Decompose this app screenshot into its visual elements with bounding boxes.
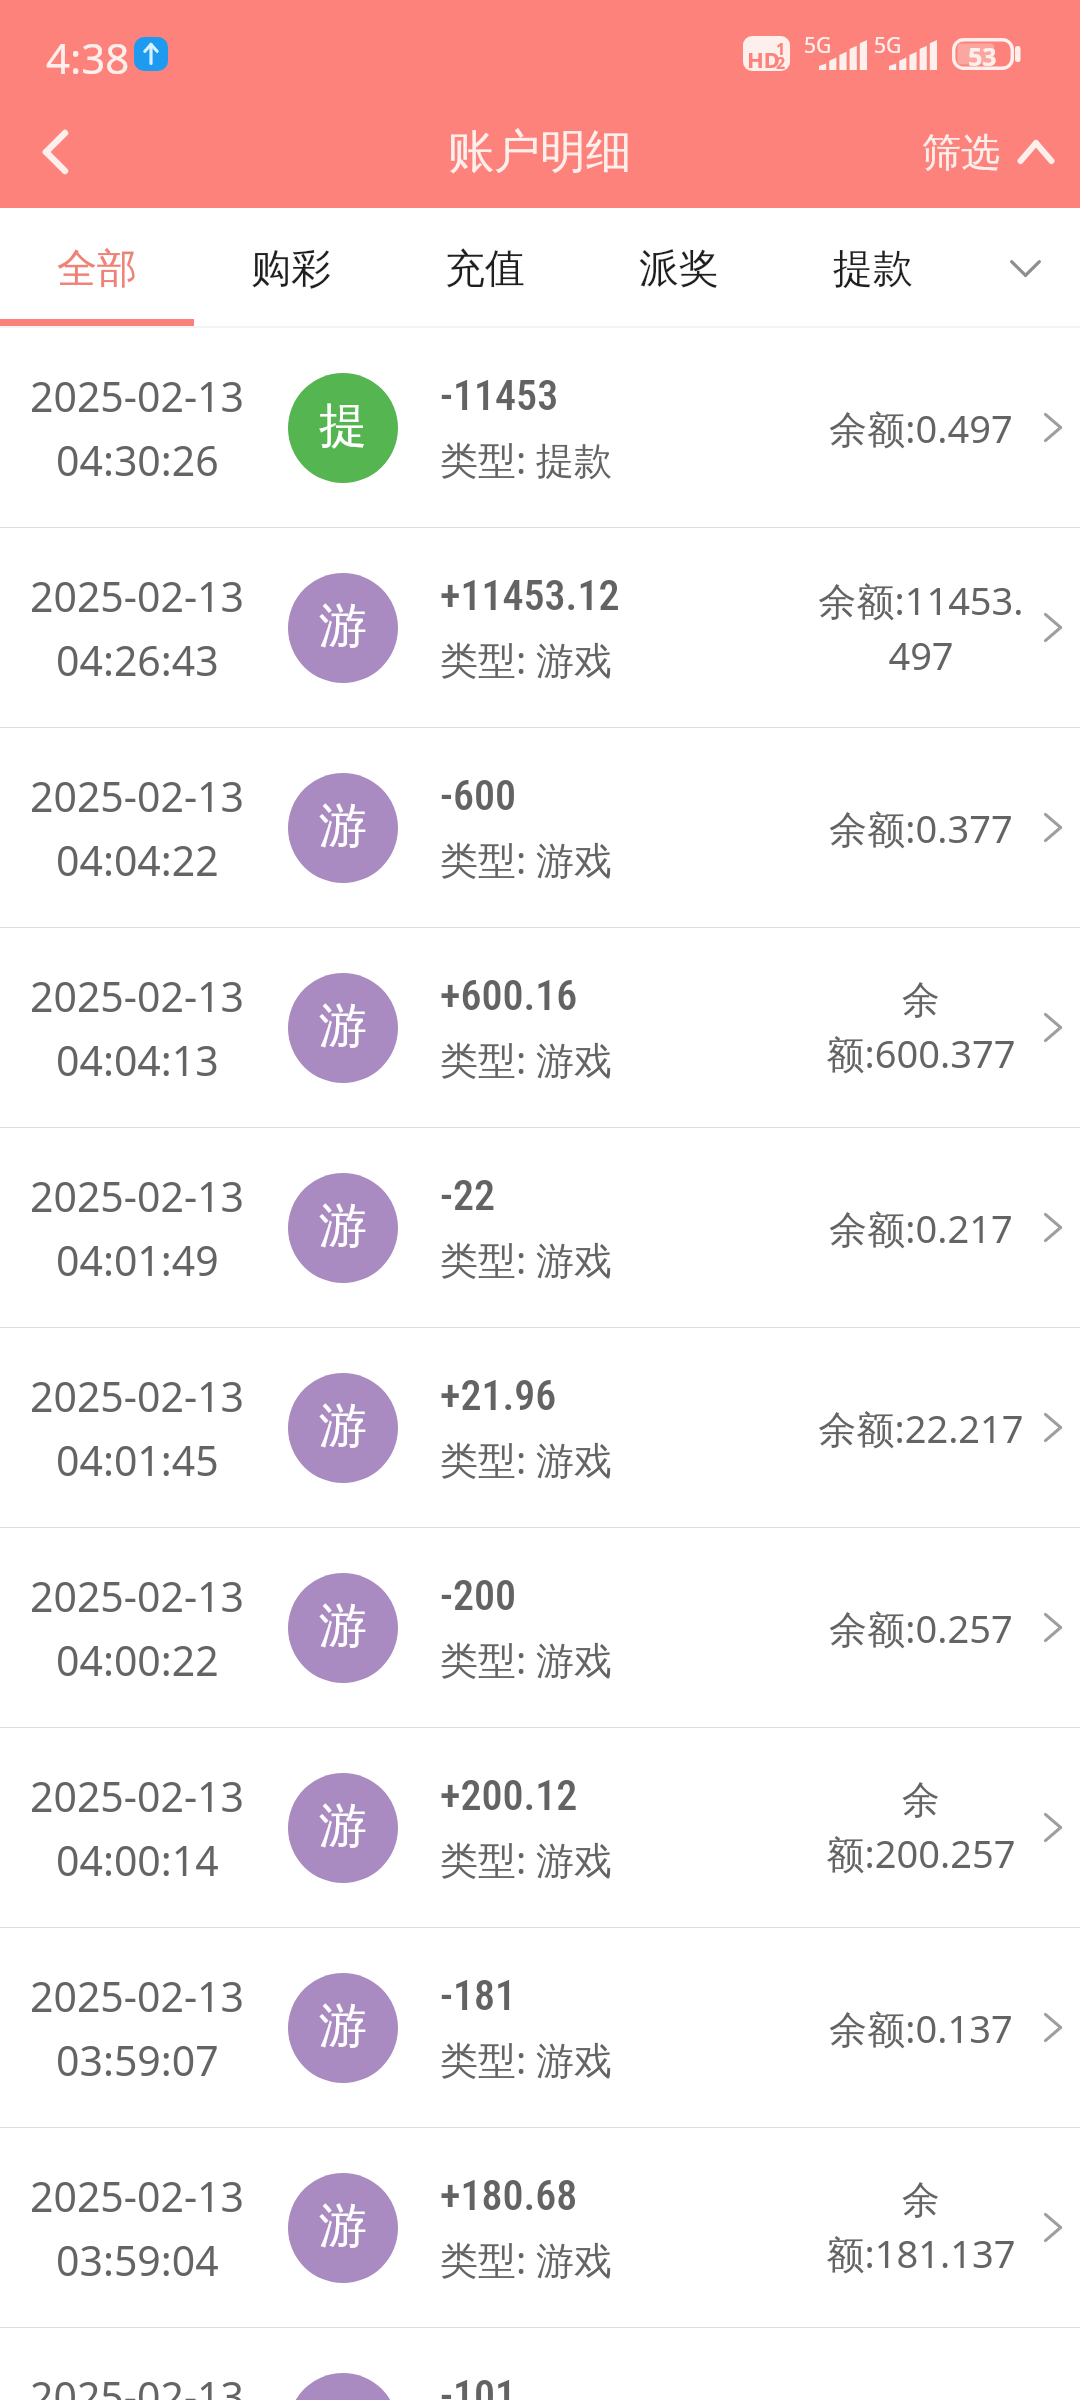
staticText: 1: [776, 38, 786, 60]
staticText: 5G: [804, 31, 832, 60]
staticText: 类型: 游戏: [440, 1833, 613, 1885]
staticText: 2025-02-13: [30, 2368, 245, 2400]
button[interactable]: 提款: [776, 208, 970, 328]
staticText: 04:00:22: [56, 1632, 219, 1688]
staticText: 类型: 游戏: [440, 833, 613, 885]
staticText: 5G: [874, 31, 902, 60]
button[interactable]: 2025-02-13: [0, 1328, 1080, 1527]
staticText: 充值: [445, 243, 525, 293]
staticText: 53: [968, 39, 997, 71]
button[interactable]: 2025-02-13: [0, 1928, 1080, 2127]
staticText: +600.16: [440, 971, 578, 1020]
staticText: 游: [319, 1396, 367, 1456]
staticText: 2025-02-13: [30, 1168, 245, 1224]
staticText: 游: [319, 996, 367, 1056]
staticText: 类型: 游戏: [440, 633, 613, 685]
staticText: 类型: 游戏: [440, 2233, 613, 2285]
staticText: -600: [440, 771, 517, 820]
staticText: 游: [319, 2196, 367, 2256]
button[interactable]: 2025-02-13: [0, 728, 1080, 927]
staticText: 游: [319, 596, 367, 656]
staticText: 2025-02-13: [30, 568, 245, 624]
staticText: 03:59:04: [56, 2232, 219, 2288]
staticText: +200.12: [440, 1771, 578, 1820]
button[interactable]: 2025-02-13: [0, 328, 1080, 527]
button[interactable]: 充值: [388, 208, 582, 328]
button[interactable]: 2025-02-13: [0, 2128, 1080, 2327]
button[interactable]: 返回: [0, 108, 108, 208]
staticText: 余额:11453.497: [816, 574, 1026, 682]
staticText: -181: [440, 1971, 517, 2020]
staticText: 提款: [833, 243, 913, 293]
staticText: 2025-02-13: [30, 368, 245, 424]
button[interactable]: 2025-02-13: [0, 528, 1080, 727]
staticText: 筛选: [922, 128, 1000, 177]
staticText: 游: [319, 1996, 367, 2056]
staticText: +11453.12: [440, 571, 620, 620]
staticText: -200: [440, 1571, 517, 1620]
button[interactable]: 派奖: [582, 208, 776, 328]
staticText: 2025-02-13: [30, 768, 245, 824]
staticText: 03:59:07: [56, 2032, 219, 2088]
staticText: 04:04:22: [56, 832, 219, 888]
staticText: 余额:22.217: [818, 1402, 1024, 1454]
staticText: 04:00:14: [56, 1832, 219, 1888]
button[interactable]: 2025-02-13: [0, 1128, 1080, 1327]
staticText: -101: [440, 2371, 517, 2400]
staticText: 提: [319, 396, 367, 456]
staticText: 余额:0.497: [829, 402, 1013, 454]
staticText: 2025-02-13: [30, 1568, 245, 1624]
staticText: 类型: 提款: [440, 433, 613, 485]
staticText: 余额:0.377: [829, 802, 1013, 854]
staticText: 2025-02-13: [30, 968, 245, 1024]
staticText: 04:30:26: [56, 432, 219, 488]
staticText: 2025-02-13: [30, 2168, 245, 2224]
staticText: 游: [319, 1596, 367, 1656]
staticText: 04:01:49: [56, 1232, 219, 1288]
button[interactable]: 2025-02-13: [0, 2328, 1080, 2400]
staticText: 全部: [57, 243, 137, 293]
staticText: 类型: 游戏: [440, 1633, 613, 1685]
staticText: 游: [319, 1196, 367, 1256]
staticText: 余额:181.137: [816, 2176, 1026, 2280]
button[interactable]: 展开更多: [970, 208, 1080, 328]
staticText: 4:38: [46, 29, 130, 86]
staticText: 04:04:13: [56, 1032, 219, 1088]
staticText: 余额:0.257: [829, 1602, 1013, 1654]
staticText: 余额:600.377: [816, 976, 1026, 1080]
button[interactable]: 2025-02-13: [0, 1728, 1080, 1927]
staticText: 类型: 游戏: [440, 2033, 613, 2085]
staticText: 游: [319, 796, 367, 856]
staticText: 派奖: [639, 243, 719, 293]
staticText: 购彩: [251, 243, 331, 293]
staticText: 2025-02-13: [30, 1768, 245, 1824]
staticText: +21.96: [440, 1371, 557, 1420]
staticText: 2025-02-13: [30, 1968, 245, 2024]
staticText: 2025-02-13: [30, 1368, 245, 1424]
staticText: 游: [319, 1796, 367, 1856]
staticText: 余额:0.137: [829, 2002, 1013, 2054]
button[interactable]: 2025-02-13: [0, 928, 1080, 1127]
staticText: 账户明细: [448, 123, 632, 181]
staticText: 类型: 游戏: [440, 1433, 613, 1485]
staticText: 2: [776, 52, 786, 74]
staticText: HD: [747, 44, 780, 74]
button[interactable]: 筛选: [922, 102, 1054, 202]
button[interactable]: 全部: [0, 208, 194, 328]
staticText: 04:26:43: [56, 632, 219, 688]
button[interactable]: 购彩: [194, 208, 388, 328]
staticText: 类型: 游戏: [440, 1033, 613, 1085]
staticText: -11453: [440, 371, 559, 420]
staticText: 余额:200.257: [816, 1776, 1026, 1880]
staticText: +180.68: [440, 2171, 578, 2220]
staticText: 余额:0.217: [829, 1202, 1013, 1254]
staticText: 类型: 游戏: [440, 1233, 613, 1285]
staticText: 04:01:45: [56, 1432, 219, 1488]
button[interactable]: 2025-02-13: [0, 1528, 1080, 1727]
staticText: -22: [440, 1171, 496, 1220]
